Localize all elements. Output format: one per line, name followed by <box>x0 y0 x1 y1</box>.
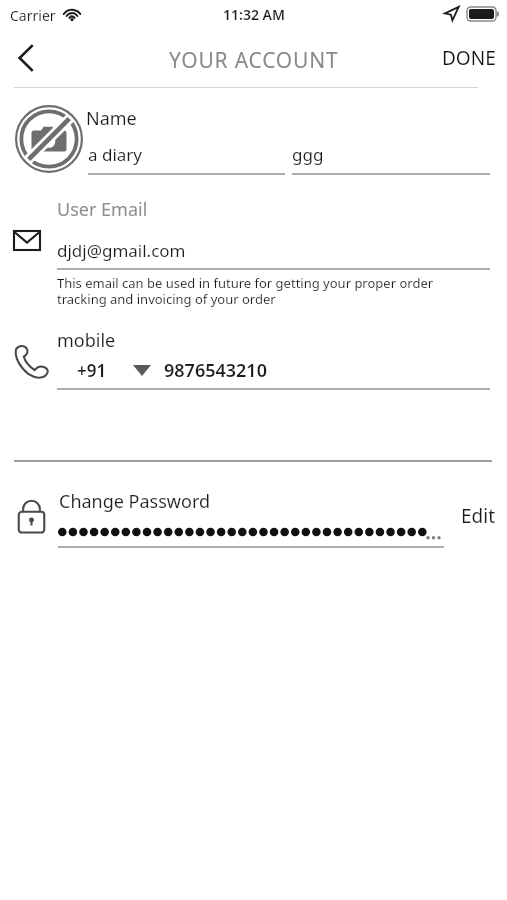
button[interactable] <box>52 484 442 546</box>
button[interactable]: Back <box>4 36 48 80</box>
button[interactable] <box>57 230 490 268</box>
button[interactable] <box>88 132 285 174</box>
staticText: 9876543210 <box>164 358 267 383</box>
staticText: Edit <box>461 503 496 529</box>
staticText: Carrier <box>10 6 56 25</box>
staticText: a diary <box>88 143 143 166</box>
staticText: This email can be used in future for get… <box>57 274 434 292</box>
staticText: +91 <box>77 359 107 382</box>
staticText: User Email <box>57 197 148 222</box>
button[interactable]: YOUR ACCOUNT <box>169 46 339 75</box>
button[interactable] <box>164 352 490 388</box>
staticText: YOUR ACCOUNT <box>169 46 339 75</box>
staticText: mobile <box>57 328 116 353</box>
staticText: 11:32 AM <box>223 5 285 24</box>
button[interactable]: Edit <box>440 495 496 537</box>
button[interactable]: DONE <box>424 38 496 78</box>
button[interactable]: Country code <box>70 352 160 388</box>
staticText: tracking and invoicing of your order <box>57 290 276 308</box>
staticText: djdj@gmail.com <box>57 239 186 262</box>
staticText: Name <box>86 106 137 131</box>
button[interactable] <box>292 132 490 174</box>
staticText: ggg <box>292 143 324 166</box>
staticText: Change Password <box>59 489 211 514</box>
staticText: DONE <box>442 45 496 71</box>
button[interactable]: Change profile photo <box>14 104 84 174</box>
